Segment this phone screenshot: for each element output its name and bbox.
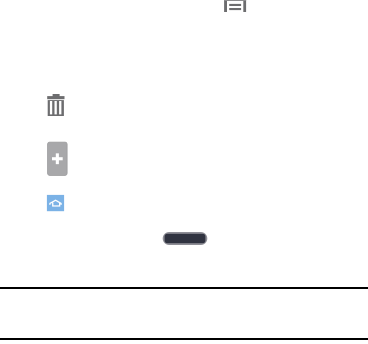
button[interactable]: Notes bbox=[224, 0, 246, 12]
button[interactable]: More bbox=[163, 232, 207, 245]
button[interactable]: Delete bbox=[47, 94, 64, 116]
button[interactable]: Add bbox=[48, 142, 67, 175]
button[interactable]: Home bbox=[47, 195, 64, 211]
